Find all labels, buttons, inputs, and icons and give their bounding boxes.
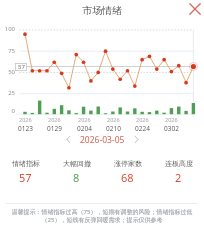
staticText: 2026: [136, 116, 149, 123]
staticText: 0123: [18, 124, 33, 133]
staticText: 57: [18, 63, 25, 71]
button[interactable]: 连板高度: [153, 159, 204, 185]
button[interactable]: 涨停家数: [102, 159, 153, 185]
staticText: 0302: [164, 124, 179, 133]
staticText: 2: [175, 170, 182, 185]
button[interactable]: Next day: [130, 133, 143, 146]
staticText: 2026-03-05: [80, 134, 125, 146]
staticText: 0: [0, 107, 15, 115]
staticText: 25: [0, 89, 15, 97]
staticText: 情绪指标: [12, 159, 40, 168]
staticText: 0224: [135, 124, 150, 133]
staticText: 8: [73, 170, 80, 185]
staticText: 2026: [19, 116, 32, 123]
button[interactable]: Close: [187, 1, 203, 17]
button[interactable]: Previous day: [62, 133, 75, 146]
staticText: 大幅回撤: [63, 159, 91, 168]
button[interactable]: 情绪指标: [0, 159, 51, 185]
staticText: 57: [19, 170, 32, 185]
staticText: 涨停家数: [114, 159, 142, 168]
staticText: 0204: [77, 124, 92, 133]
button[interactable]: 2026-03-05: [80, 134, 125, 146]
staticText: 连板高度: [165, 159, 193, 168]
staticText: 2026: [107, 116, 120, 123]
staticText: 75: [0, 47, 15, 55]
staticText: 市场情绪: [0, 4, 204, 17]
staticText: 2026: [78, 116, 91, 123]
staticText: 50: [0, 68, 15, 76]
staticText: 68: [121, 170, 134, 185]
staticText: 0129: [47, 124, 62, 133]
staticText: 2026: [48, 116, 61, 123]
staticText: 0210: [106, 124, 121, 133]
staticText: 温馨提示：情绪指标过高（75），短期有调整的风险；情绪指标过低（25），短线有反…: [5, 208, 199, 224]
staticText: 100: [0, 25, 15, 33]
staticText: 2026: [165, 116, 178, 123]
button[interactable]: 大幅回撤: [51, 159, 102, 185]
